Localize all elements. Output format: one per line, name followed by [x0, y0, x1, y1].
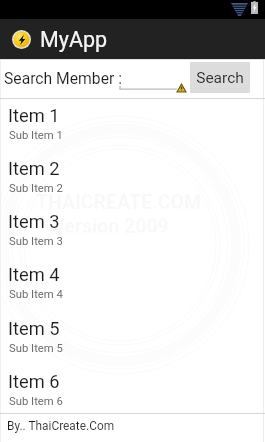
- staticText: MyApp: [40, 27, 108, 52]
- button[interactable]: Member name input: [119, 62, 185, 90]
- staticText: Sub Item 1: [9, 129, 63, 142]
- staticText: THAICREATE.COM: [36, 191, 202, 214]
- staticText: Item 1: [8, 105, 60, 126]
- button[interactable]: Item 3: [0, 205, 265, 258]
- staticText: Item 4: [8, 264, 60, 285]
- staticText: Sub Item 3: [9, 235, 63, 248]
- button[interactable]: Item 6: [0, 365, 265, 418]
- staticText: By.. ThaiCreate.Com: [7, 419, 115, 433]
- button[interactable]: Item 2: [0, 152, 265, 205]
- staticText: Item 2: [8, 158, 60, 179]
- staticText: Item 6: [8, 371, 60, 392]
- staticText: Item 3: [8, 211, 60, 232]
- staticText: Sub Item 5: [9, 342, 63, 355]
- button[interactable]: Item 1: [0, 99, 265, 152]
- staticText: Search Member :: [4, 69, 122, 87]
- staticText: Version 2009: [52, 215, 169, 238]
- button[interactable]: Item 5: [0, 312, 265, 365]
- staticText: Sub Item 6: [9, 395, 63, 408]
- button[interactable]: Search: [190, 62, 250, 93]
- button[interactable]: Item 4: [0, 258, 265, 311]
- staticText: Sub Item 2: [9, 182, 63, 195]
- staticText: Sub Item 4: [9, 288, 63, 301]
- staticText: Item 5: [8, 318, 60, 339]
- staticText: Search: [196, 69, 244, 87]
